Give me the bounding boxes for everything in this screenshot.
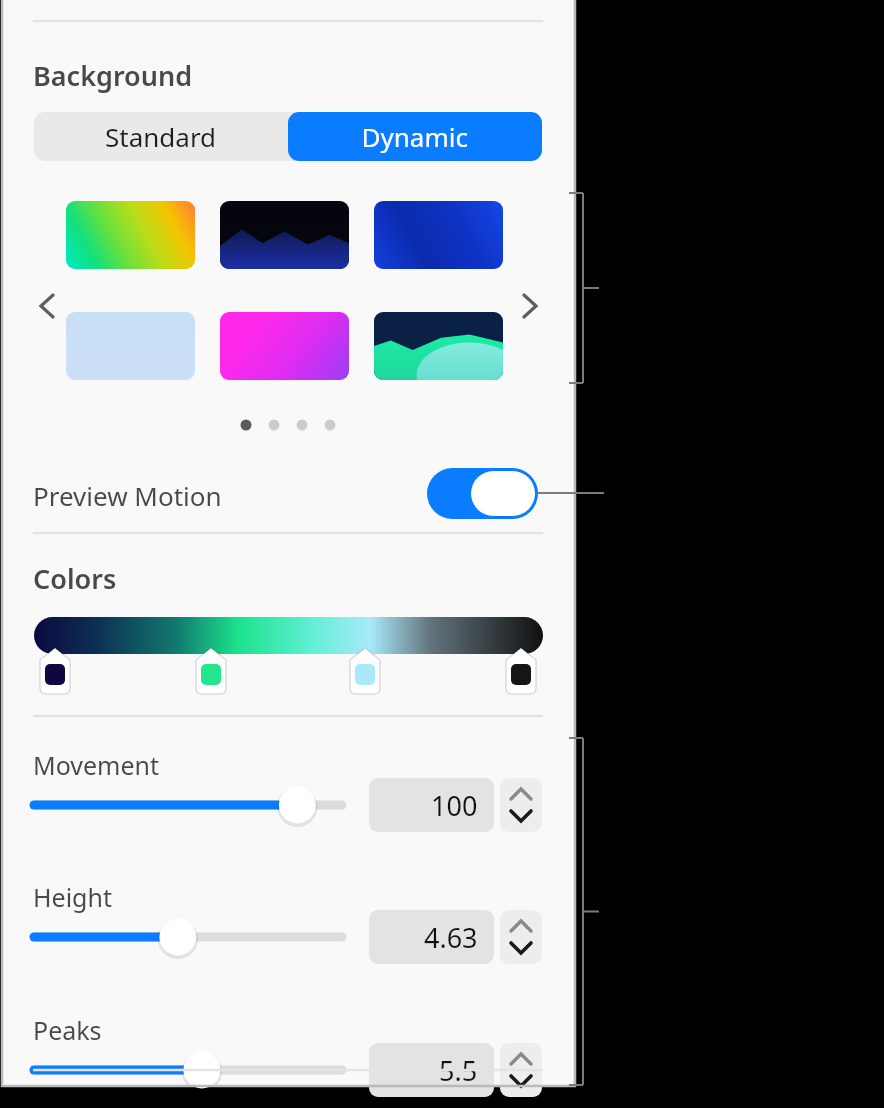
button[interactable]: Stepper 3 (500, 1043, 542, 1097)
button[interactable]: Next backgrounds (510, 286, 550, 326)
button[interactable]: Background preset (66, 201, 195, 269)
button[interactable]: Background preset (374, 201, 503, 269)
button[interactable]: Background preset (220, 312, 349, 380)
button[interactable]: Preview Motion (427, 468, 538, 519)
button[interactable]: Background preset (374, 312, 503, 380)
button[interactable]: Dynamic (288, 112, 542, 161)
button[interactable]: Background preset (66, 312, 195, 380)
button[interactable]: Stepper 2 (500, 910, 542, 964)
button[interactable]: Previous backgrounds (27, 286, 67, 326)
button[interactable]: Background preset (220, 201, 349, 269)
button[interactable]: Standard (34, 112, 288, 161)
button[interactable]: Stepper 1 (500, 778, 542, 832)
